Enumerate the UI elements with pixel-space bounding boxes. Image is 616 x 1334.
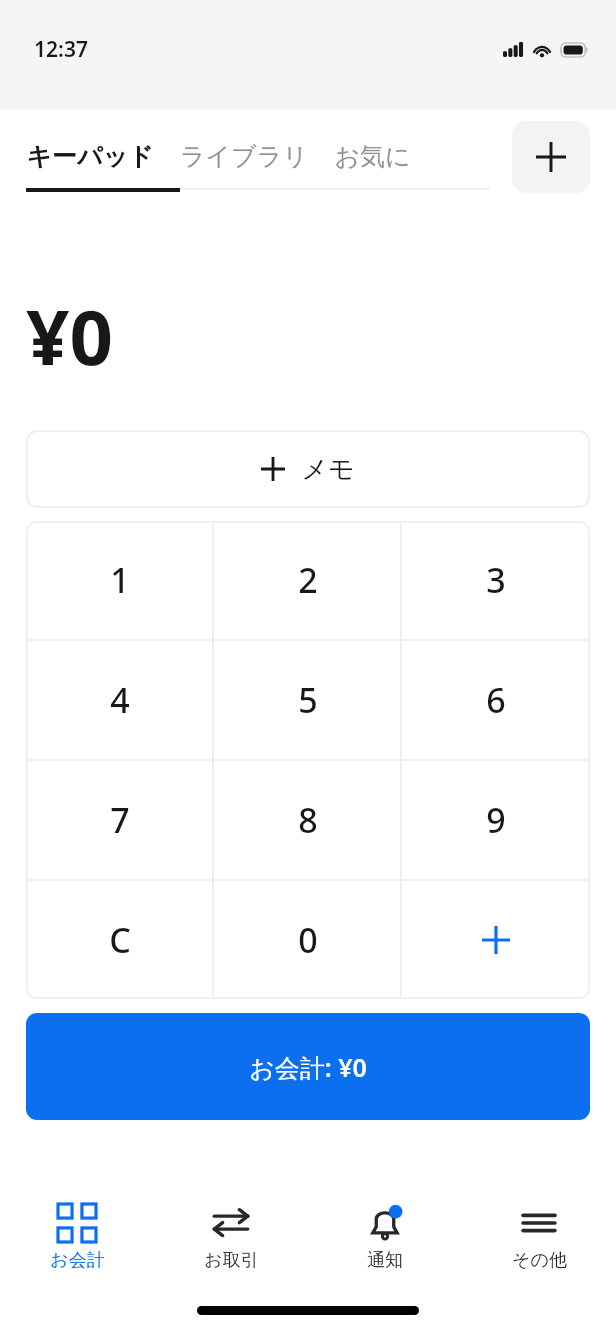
button[interactable]: Add <box>512 121 590 193</box>
staticText: 1 <box>110 557 130 603</box>
staticText: 2 <box>298 557 318 603</box>
staticText: C <box>109 917 131 963</box>
button[interactable]: 3 <box>402 521 590 639</box>
button[interactable]: 1 <box>26 521 214 639</box>
staticText: ライブラリ <box>180 141 308 172</box>
staticText: 通知 <box>367 1249 403 1272</box>
button[interactable]: 0 <box>214 881 402 999</box>
button[interactable]: 6 <box>402 641 590 759</box>
staticText: その他 <box>512 1249 567 1272</box>
button[interactable]: 2 <box>214 521 402 639</box>
button[interactable]: お気に <box>334 141 411 172</box>
button[interactable]: お会計 <box>0 1190 154 1295</box>
staticText: 7 <box>110 797 130 843</box>
button[interactable]: キーパッド <box>26 141 154 172</box>
button[interactable]: ライブラリ <box>180 141 308 172</box>
button[interactable]: 9 <box>402 761 590 879</box>
button[interactable] <box>402 881 590 999</box>
staticText: 5 <box>298 677 318 723</box>
button[interactable]: メモ <box>26 430 590 508</box>
staticText: お会計 <box>50 1249 105 1272</box>
staticText: 8 <box>298 797 318 843</box>
staticText: キーパッド <box>26 141 154 172</box>
staticText: お会計: ¥0 <box>249 1050 367 1084</box>
button[interactable]: 7 <box>26 761 214 879</box>
staticText: 4 <box>110 677 130 723</box>
button[interactable]: C <box>26 881 214 999</box>
staticText: メモ <box>301 453 355 486</box>
button[interactable]: お取引 <box>154 1190 308 1295</box>
staticText: 3 <box>486 557 506 603</box>
staticText: 9 <box>486 797 506 843</box>
button[interactable]: 8 <box>214 761 402 879</box>
staticText: お気に <box>334 141 411 172</box>
staticText: 6 <box>486 677 506 723</box>
staticText: お取引 <box>204 1249 259 1272</box>
button[interactable]: 5 <box>214 641 402 759</box>
staticText: 12:37 <box>34 35 88 64</box>
button[interactable]: 通知 <box>308 1190 462 1295</box>
button[interactable]: その他 <box>462 1190 616 1295</box>
button[interactable]: 4 <box>26 641 214 759</box>
staticText: ¥0 <box>26 284 113 388</box>
button[interactable]: お会計: ¥0 <box>26 1013 590 1120</box>
staticText: 0 <box>298 917 318 963</box>
